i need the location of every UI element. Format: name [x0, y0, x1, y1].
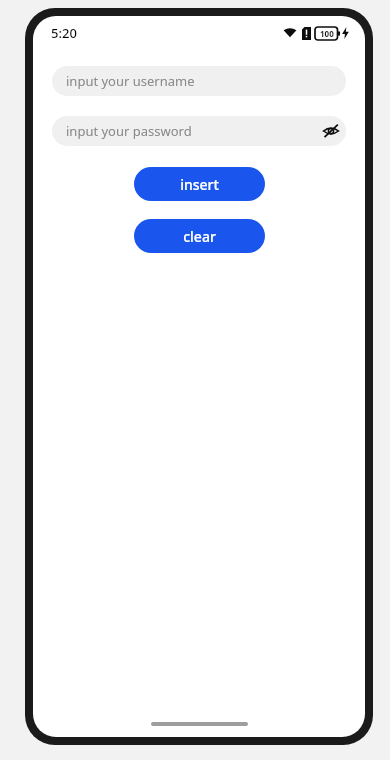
button[interactable]: input your password: [52, 116, 346, 146]
button[interactable]: insert: [134, 167, 265, 201]
staticText: insert: [180, 175, 219, 194]
staticText: 100: [320, 28, 334, 39]
button[interactable]: Toggle password visibility: [316, 116, 346, 146]
staticText: input your password: [66, 122, 192, 140]
button[interactable]: input your username: [52, 66, 346, 96]
staticText: clear: [183, 227, 216, 246]
staticText: input your username: [66, 72, 195, 90]
button[interactable]: clear: [134, 219, 265, 253]
staticText: 5:20: [51, 24, 77, 42]
